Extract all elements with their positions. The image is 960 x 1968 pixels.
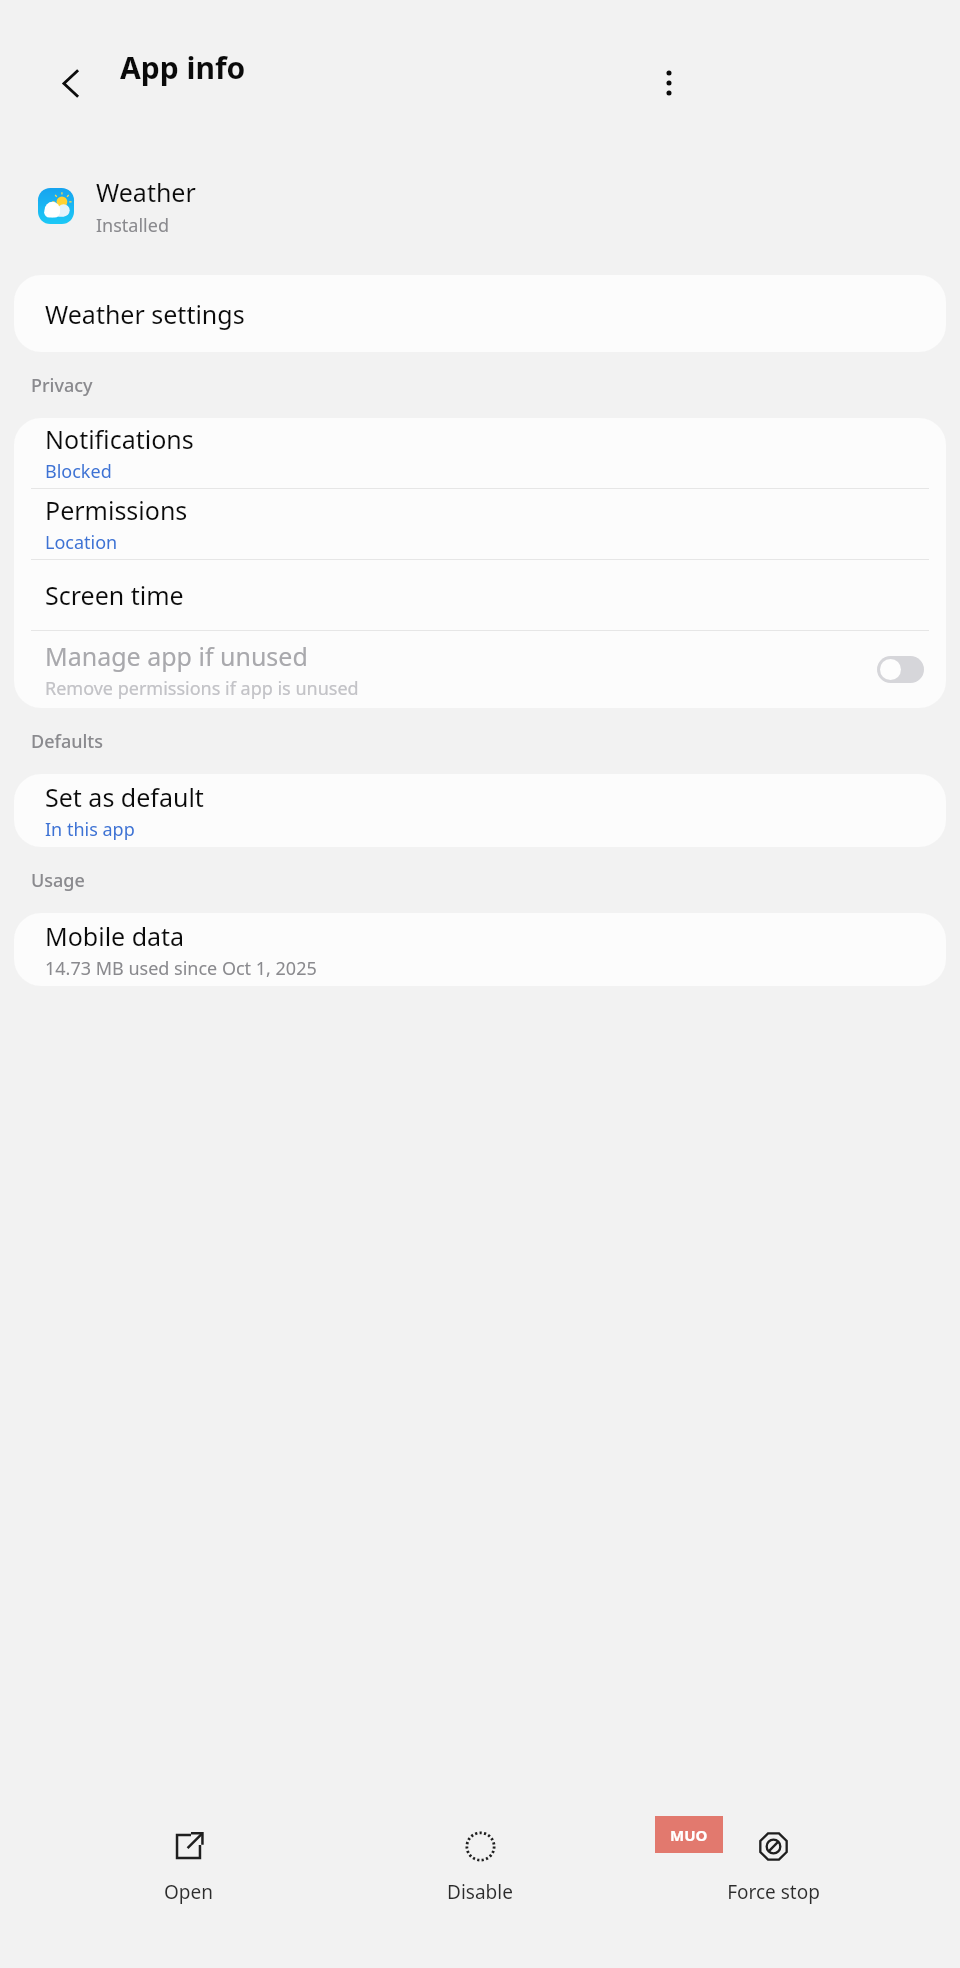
staticText: Open bbox=[164, 1879, 213, 1905]
button[interactable]: More options bbox=[640, 54, 698, 112]
staticText: Screen time bbox=[45, 578, 184, 612]
staticText: Weather bbox=[96, 175, 196, 209]
staticText: Permissions bbox=[45, 493, 188, 527]
button[interactable]: Weather settings bbox=[14, 275, 946, 352]
staticText: Mobile data bbox=[45, 919, 185, 953]
button[interactable]: Screen time bbox=[14, 560, 946, 630]
button[interactable]: Disable bbox=[375, 1806, 585, 1905]
button[interactable]: Mobile data bbox=[14, 913, 946, 986]
button[interactable]: Notifications bbox=[14, 418, 946, 488]
staticText: MUO bbox=[670, 1825, 708, 1845]
staticText: Manage app if unused bbox=[45, 639, 308, 673]
staticText: Force stop bbox=[727, 1879, 820, 1905]
staticText: Installed bbox=[96, 213, 169, 238]
staticText: App info bbox=[120, 47, 246, 88]
staticText: In this app bbox=[45, 817, 135, 842]
staticText: Location bbox=[45, 530, 118, 555]
button[interactable]: Open bbox=[83, 1806, 293, 1905]
staticText: Defaults bbox=[31, 729, 103, 754]
staticText: Disable bbox=[447, 1879, 513, 1905]
button[interactable]: Set as default bbox=[14, 774, 946, 847]
staticText: Usage bbox=[31, 868, 85, 893]
button[interactable]: Permissions bbox=[14, 489, 946, 559]
button[interactable]: Force stop bbox=[668, 1806, 878, 1905]
staticText: Notifications bbox=[45, 422, 194, 456]
staticText: 14.73 MB used since Oct 1, 2025 bbox=[45, 956, 317, 981]
button[interactable]: Back bbox=[42, 54, 100, 112]
staticText: Privacy bbox=[31, 373, 93, 398]
staticText: Set as default bbox=[45, 780, 204, 814]
button[interactable]: Manage app if unused bbox=[877, 656, 924, 683]
staticText: Blocked bbox=[45, 459, 112, 484]
button[interactable]: Manage app if unused bbox=[14, 631, 946, 708]
staticText: Remove permissions if app is unused bbox=[45, 676, 359, 701]
staticText: Weather settings bbox=[45, 297, 245, 331]
